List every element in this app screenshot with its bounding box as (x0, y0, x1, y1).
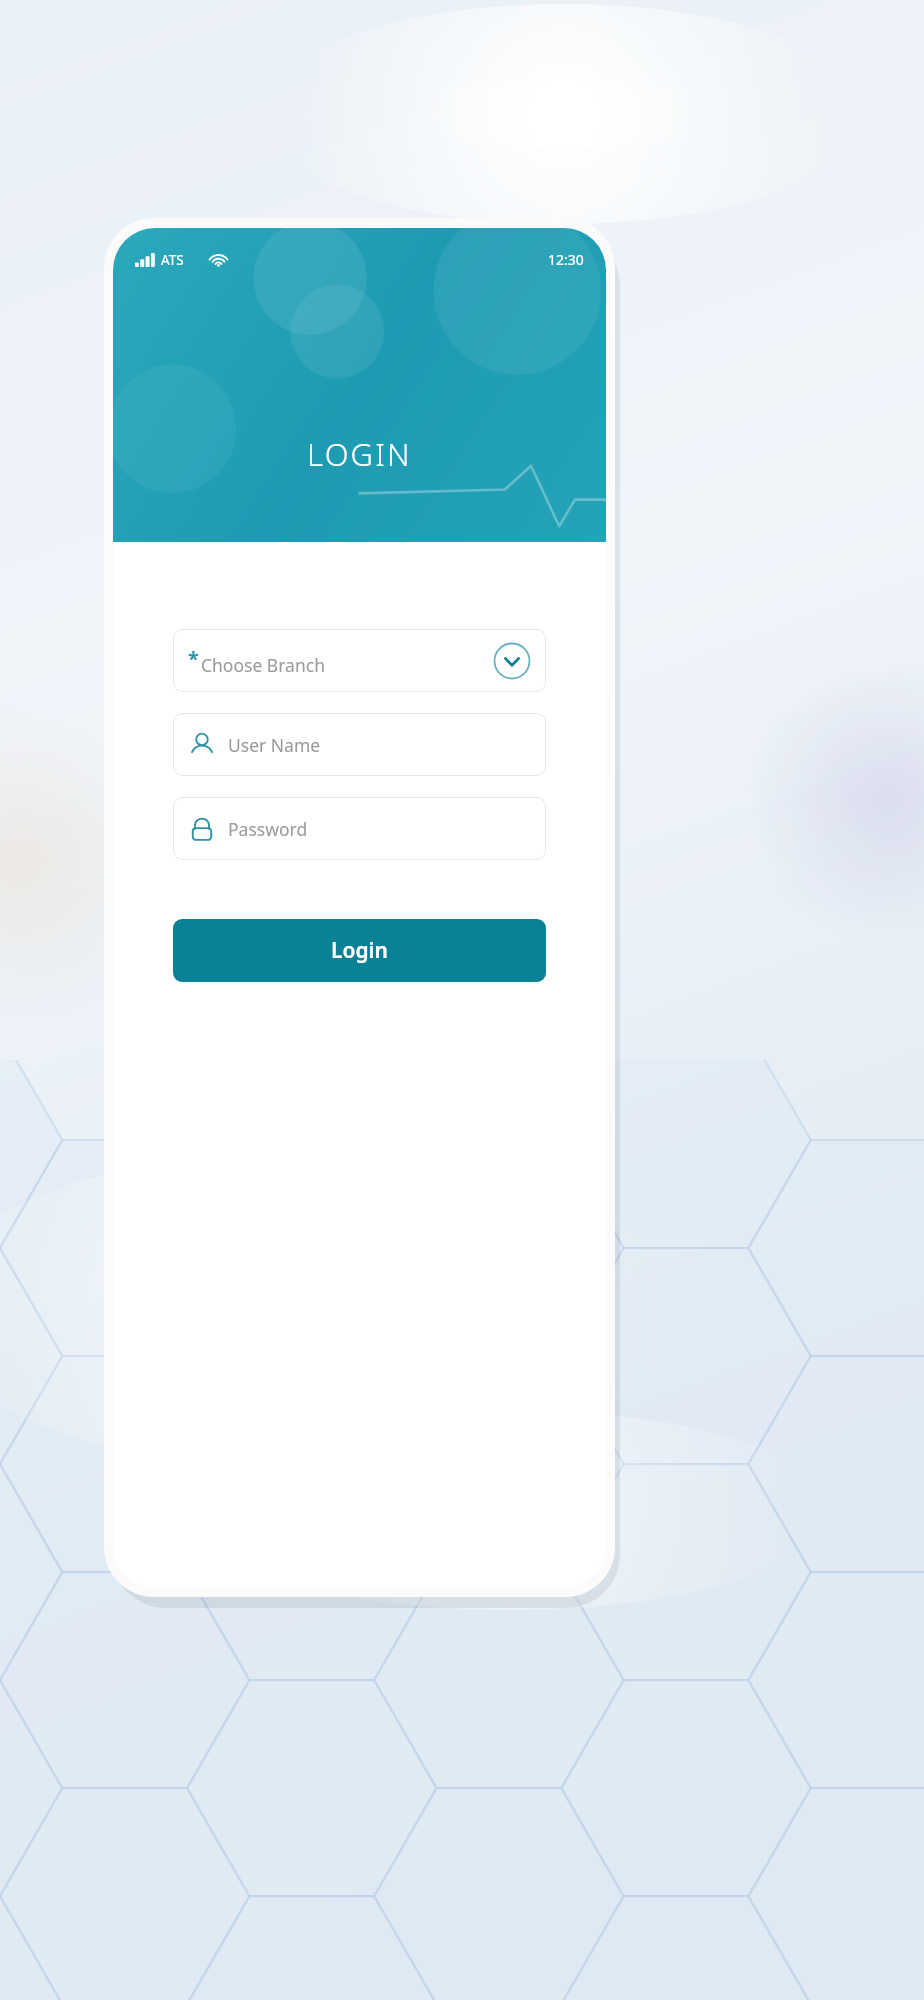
staticText: Login (331, 936, 388, 965)
staticText: Password (228, 817, 308, 841)
staticText: User Name (228, 733, 321, 757)
staticText: LOGIN (307, 433, 412, 475)
button[interactable]: * (173, 629, 546, 692)
other: Open branch list (493, 642, 531, 680)
button[interactable]: Login (173, 919, 546, 982)
staticText: * (188, 645, 199, 672)
staticText: 12:30 (548, 250, 584, 269)
staticText: ATS (161, 251, 184, 269)
staticText: Choose Branch (201, 653, 325, 677)
button[interactable]: User Name (173, 713, 546, 776)
button[interactable]: Password (173, 797, 546, 860)
